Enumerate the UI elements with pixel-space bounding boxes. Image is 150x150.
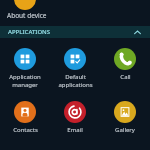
staticText: APPLICATIONS xyxy=(8,28,51,36)
staticText: Application manager xyxy=(9,73,41,89)
staticText: Contacts xyxy=(13,126,38,134)
button[interactable]: APPLICATIONS xyxy=(0,26,150,38)
other: Gallery xyxy=(114,101,136,123)
other: Email xyxy=(64,101,86,123)
button[interactable]: Contacts xyxy=(0,100,50,135)
button[interactable]: Email xyxy=(50,100,100,135)
staticText: Email xyxy=(67,126,83,134)
button[interactable]: Default applications xyxy=(50,47,100,90)
button[interactable]: About device xyxy=(0,0,150,26)
staticText: Gallery xyxy=(115,126,135,134)
staticText: About device xyxy=(7,11,47,20)
other: Contacts xyxy=(14,101,36,123)
other: Call xyxy=(114,48,136,70)
staticText: Default applications xyxy=(58,73,93,89)
button[interactable]: Call xyxy=(100,47,150,82)
button[interactable]: Application manager xyxy=(0,47,50,90)
other: Application manager xyxy=(14,48,36,70)
other: Default applications xyxy=(64,48,86,70)
staticText: Call xyxy=(120,73,131,81)
button[interactable]: Gallery xyxy=(100,100,150,135)
